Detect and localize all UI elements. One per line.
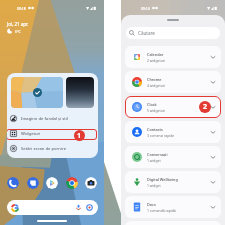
button[interactable]: Widgeturi: [7, 126, 98, 141]
button[interactable]: Conversații: [125, 146, 221, 168]
staticText: Contacts: [147, 127, 163, 132]
staticText: Imagine de fundal și stil: [21, 116, 68, 122]
staticText: 1: [77, 131, 82, 141]
button[interactable]: Calendar: [125, 46, 221, 68]
staticText: 1 widget: [147, 158, 161, 163]
staticText: Clock: [147, 102, 157, 107]
button[interactable]: Chrome: [66, 177, 78, 189]
button[interactable]: Setări ecran de pornire: [7, 141, 98, 156]
staticText: 1 comandă rapidă: [147, 208, 176, 213]
button[interactable]: Messages: [27, 177, 39, 189]
staticText: 4 widgeturi: [147, 83, 166, 88]
button[interactable]: Clock: [125, 96, 221, 118]
staticText: 09:14: [141, 6, 150, 11]
staticText: Conversații: [147, 152, 168, 157]
staticText: 2: [203, 102, 208, 112]
button[interactable]: Căutare: [126, 27, 220, 39]
staticText: Chrome: [147, 77, 162, 82]
staticText: 5 widgeturi: [147, 108, 166, 113]
staticText: Widgeturi: [21, 131, 41, 137]
button[interactable]: Contacts: [125, 121, 221, 143]
staticText: 09:18: [17, 6, 26, 11]
staticText: Calendar: [147, 52, 164, 57]
staticText: Digital Wellbeing: [147, 177, 178, 182]
button[interactable]: Imagine de fundal și stil: [7, 111, 98, 126]
staticText: Docs: [147, 202, 156, 207]
button[interactable]: Play Store: [46, 177, 58, 189]
button[interactable]: Docs: [125, 196, 221, 218]
staticText: 2 widgeturi: [147, 58, 166, 63]
staticText: Joi, 21 apr.: [7, 21, 29, 27]
button[interactable]: Search: [7, 200, 98, 215]
button[interactable]: Phone: [7, 177, 19, 189]
button[interactable]: Digital Wellbeing: [125, 171, 221, 193]
staticText: 6°C: [15, 29, 21, 34]
staticText: Setări ecran de pornire: [21, 146, 67, 152]
staticText: Căutare: [138, 30, 155, 36]
staticText: 1 widget: [147, 183, 161, 188]
button[interactable]: Camera: [85, 177, 97, 189]
staticText: 3 comenzi rapide: [147, 133, 175, 138]
button[interactable]: Chrome: [125, 71, 221, 93]
